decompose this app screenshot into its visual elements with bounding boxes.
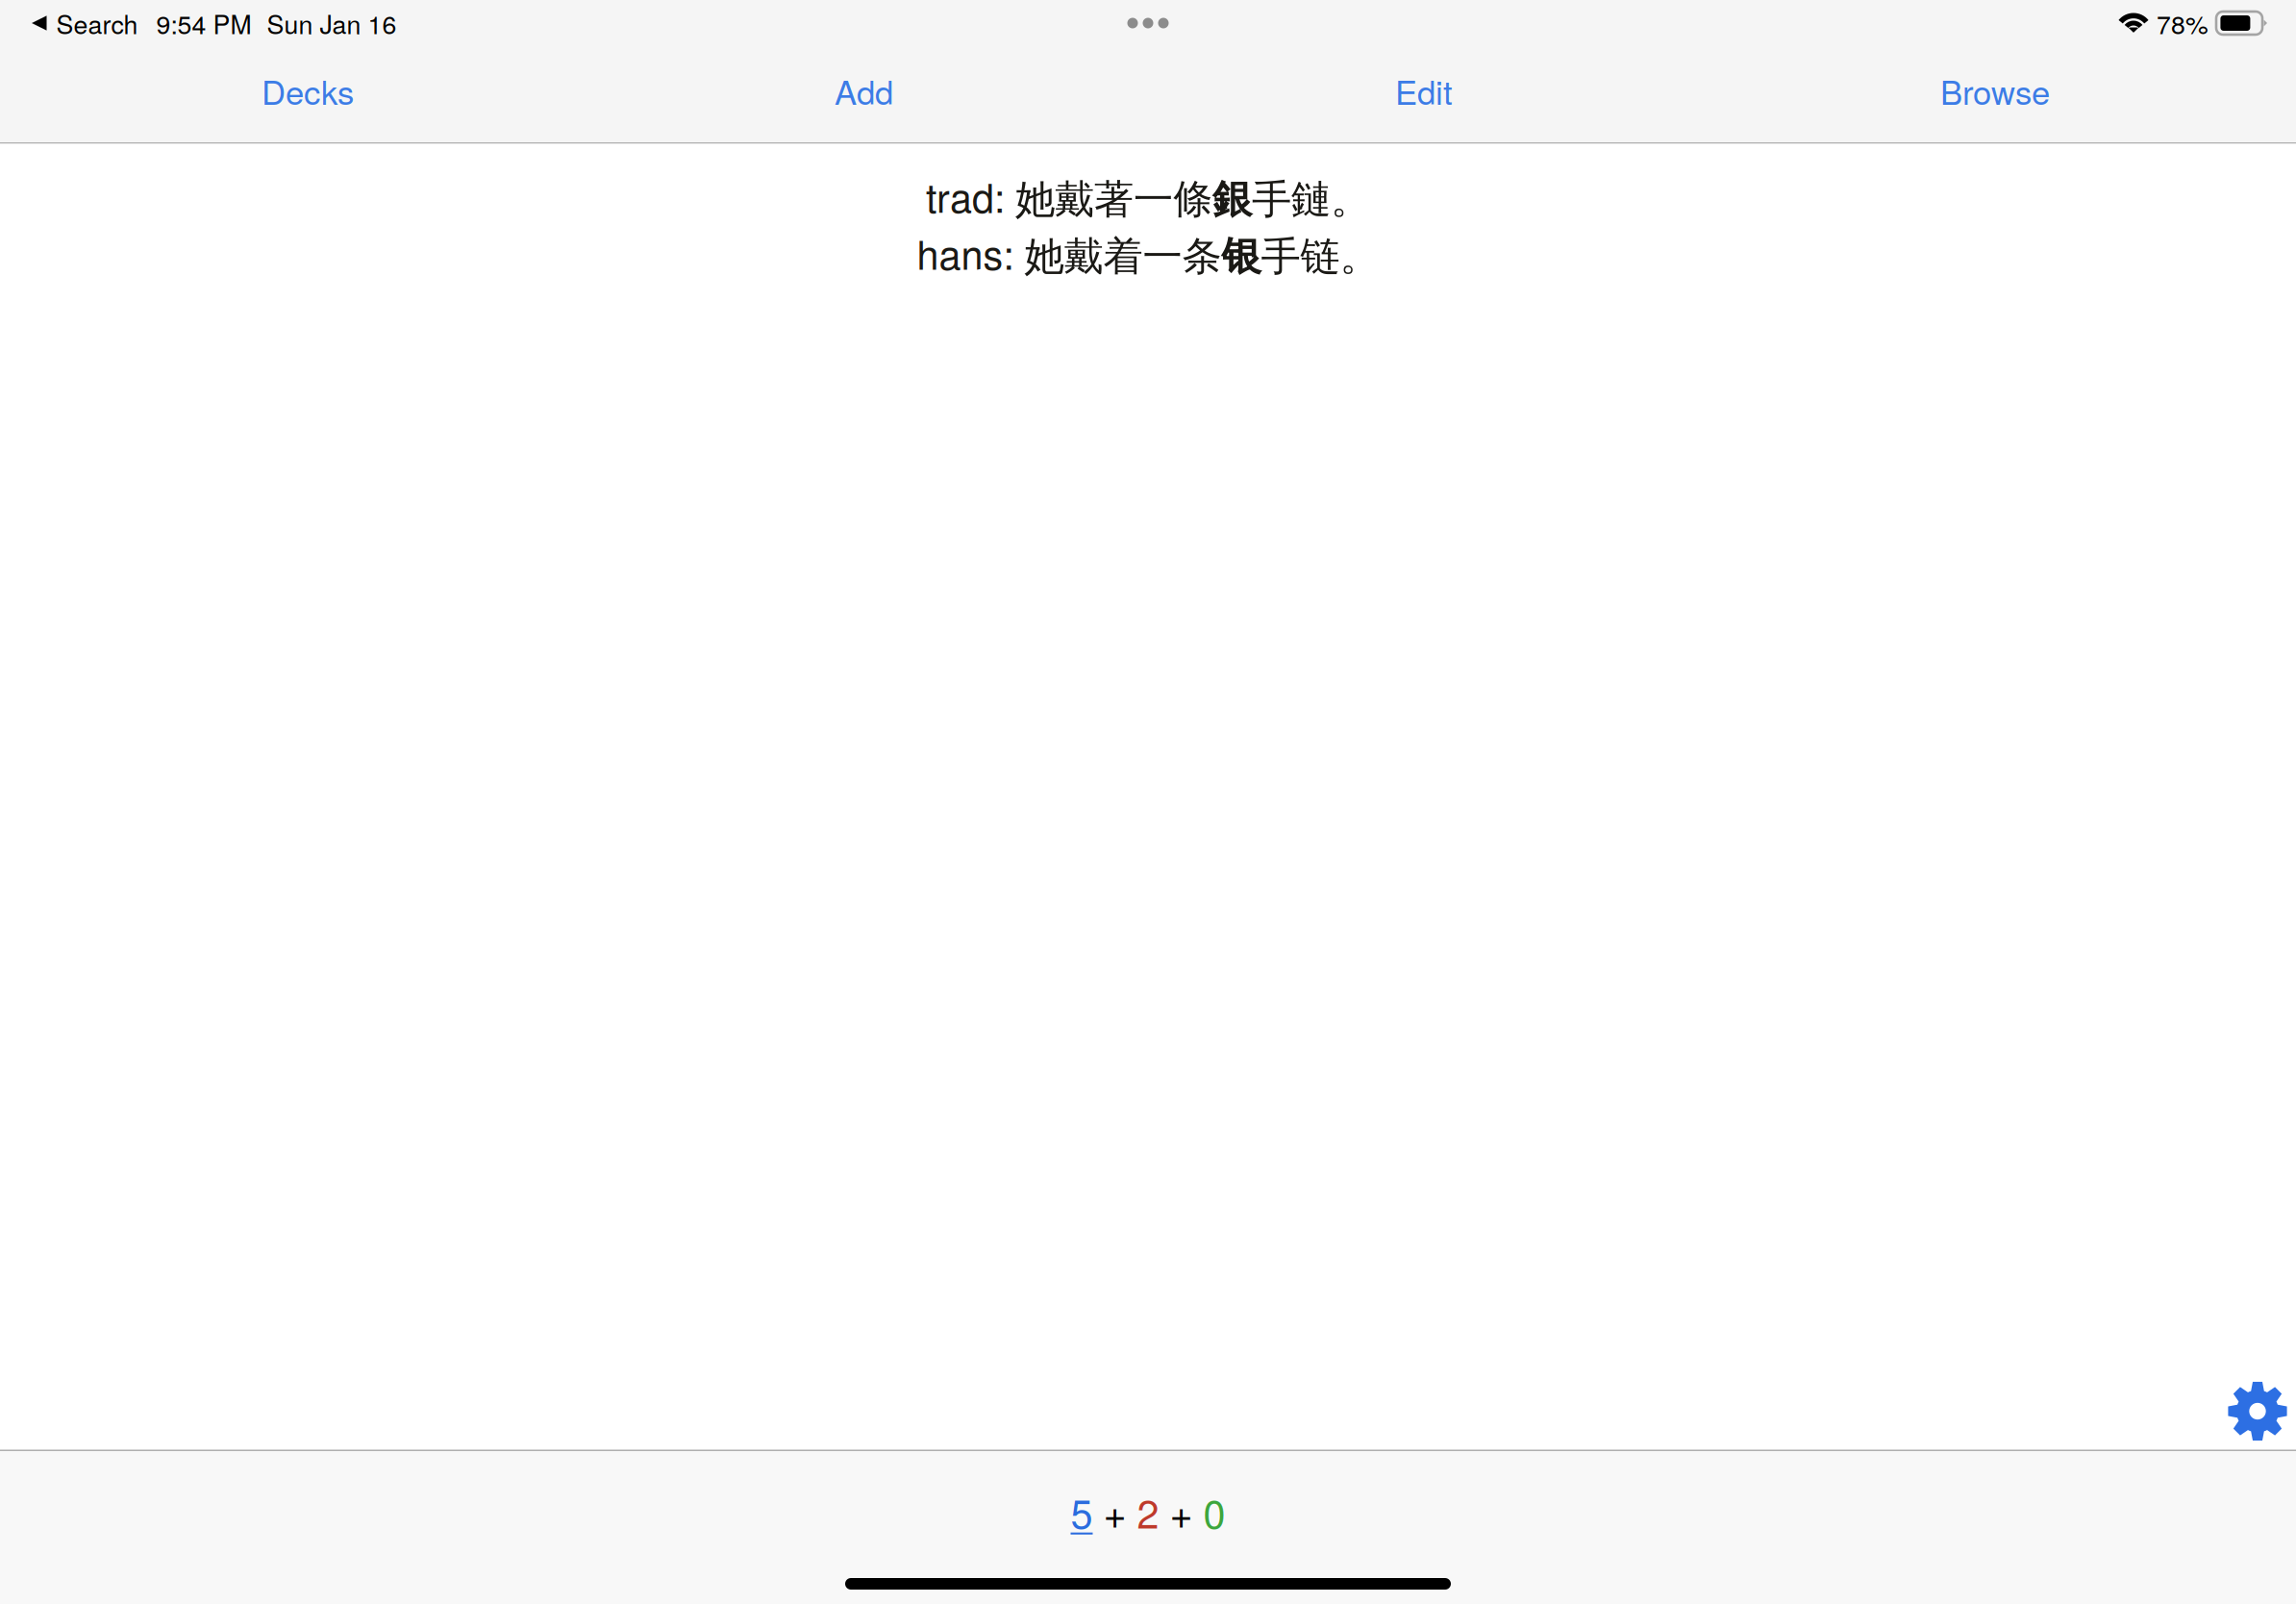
staticText: Sun Jan 16 [267, 5, 397, 41]
button[interactable]: Edit [1374, 51, 1474, 137]
button[interactable]: Add [813, 51, 914, 137]
staticText: Add [835, 67, 893, 114]
staticText: 9:54 PM [156, 5, 251, 41]
staticText: 5 [1071, 1483, 1093, 1540]
button[interactable]: 5 [1071, 1483, 1225, 1540]
button[interactable]: Show answer [0, 144, 2296, 1450]
staticText: + [1159, 1483, 1203, 1540]
staticText: Browse [1940, 67, 2050, 114]
staticText: 0 [1203, 1483, 1225, 1540]
button[interactable]: Decks [240, 51, 375, 137]
staticText: Decks [262, 67, 354, 114]
staticText: hans: 她戴着一条银手链。 [917, 225, 1379, 281]
staticText: 78% [2157, 5, 2209, 41]
button[interactable]: Browse [1919, 51, 2071, 137]
staticText: + [1093, 1483, 1137, 1540]
button[interactable]: Reviewer settings [2228, 1381, 2296, 1450]
staticText: Search [56, 5, 138, 41]
staticText: 2 [1137, 1483, 1159, 1540]
staticText: Edit [1395, 67, 1453, 114]
staticText: trad: 她戴著一條銀手鏈。 [926, 168, 1370, 224]
